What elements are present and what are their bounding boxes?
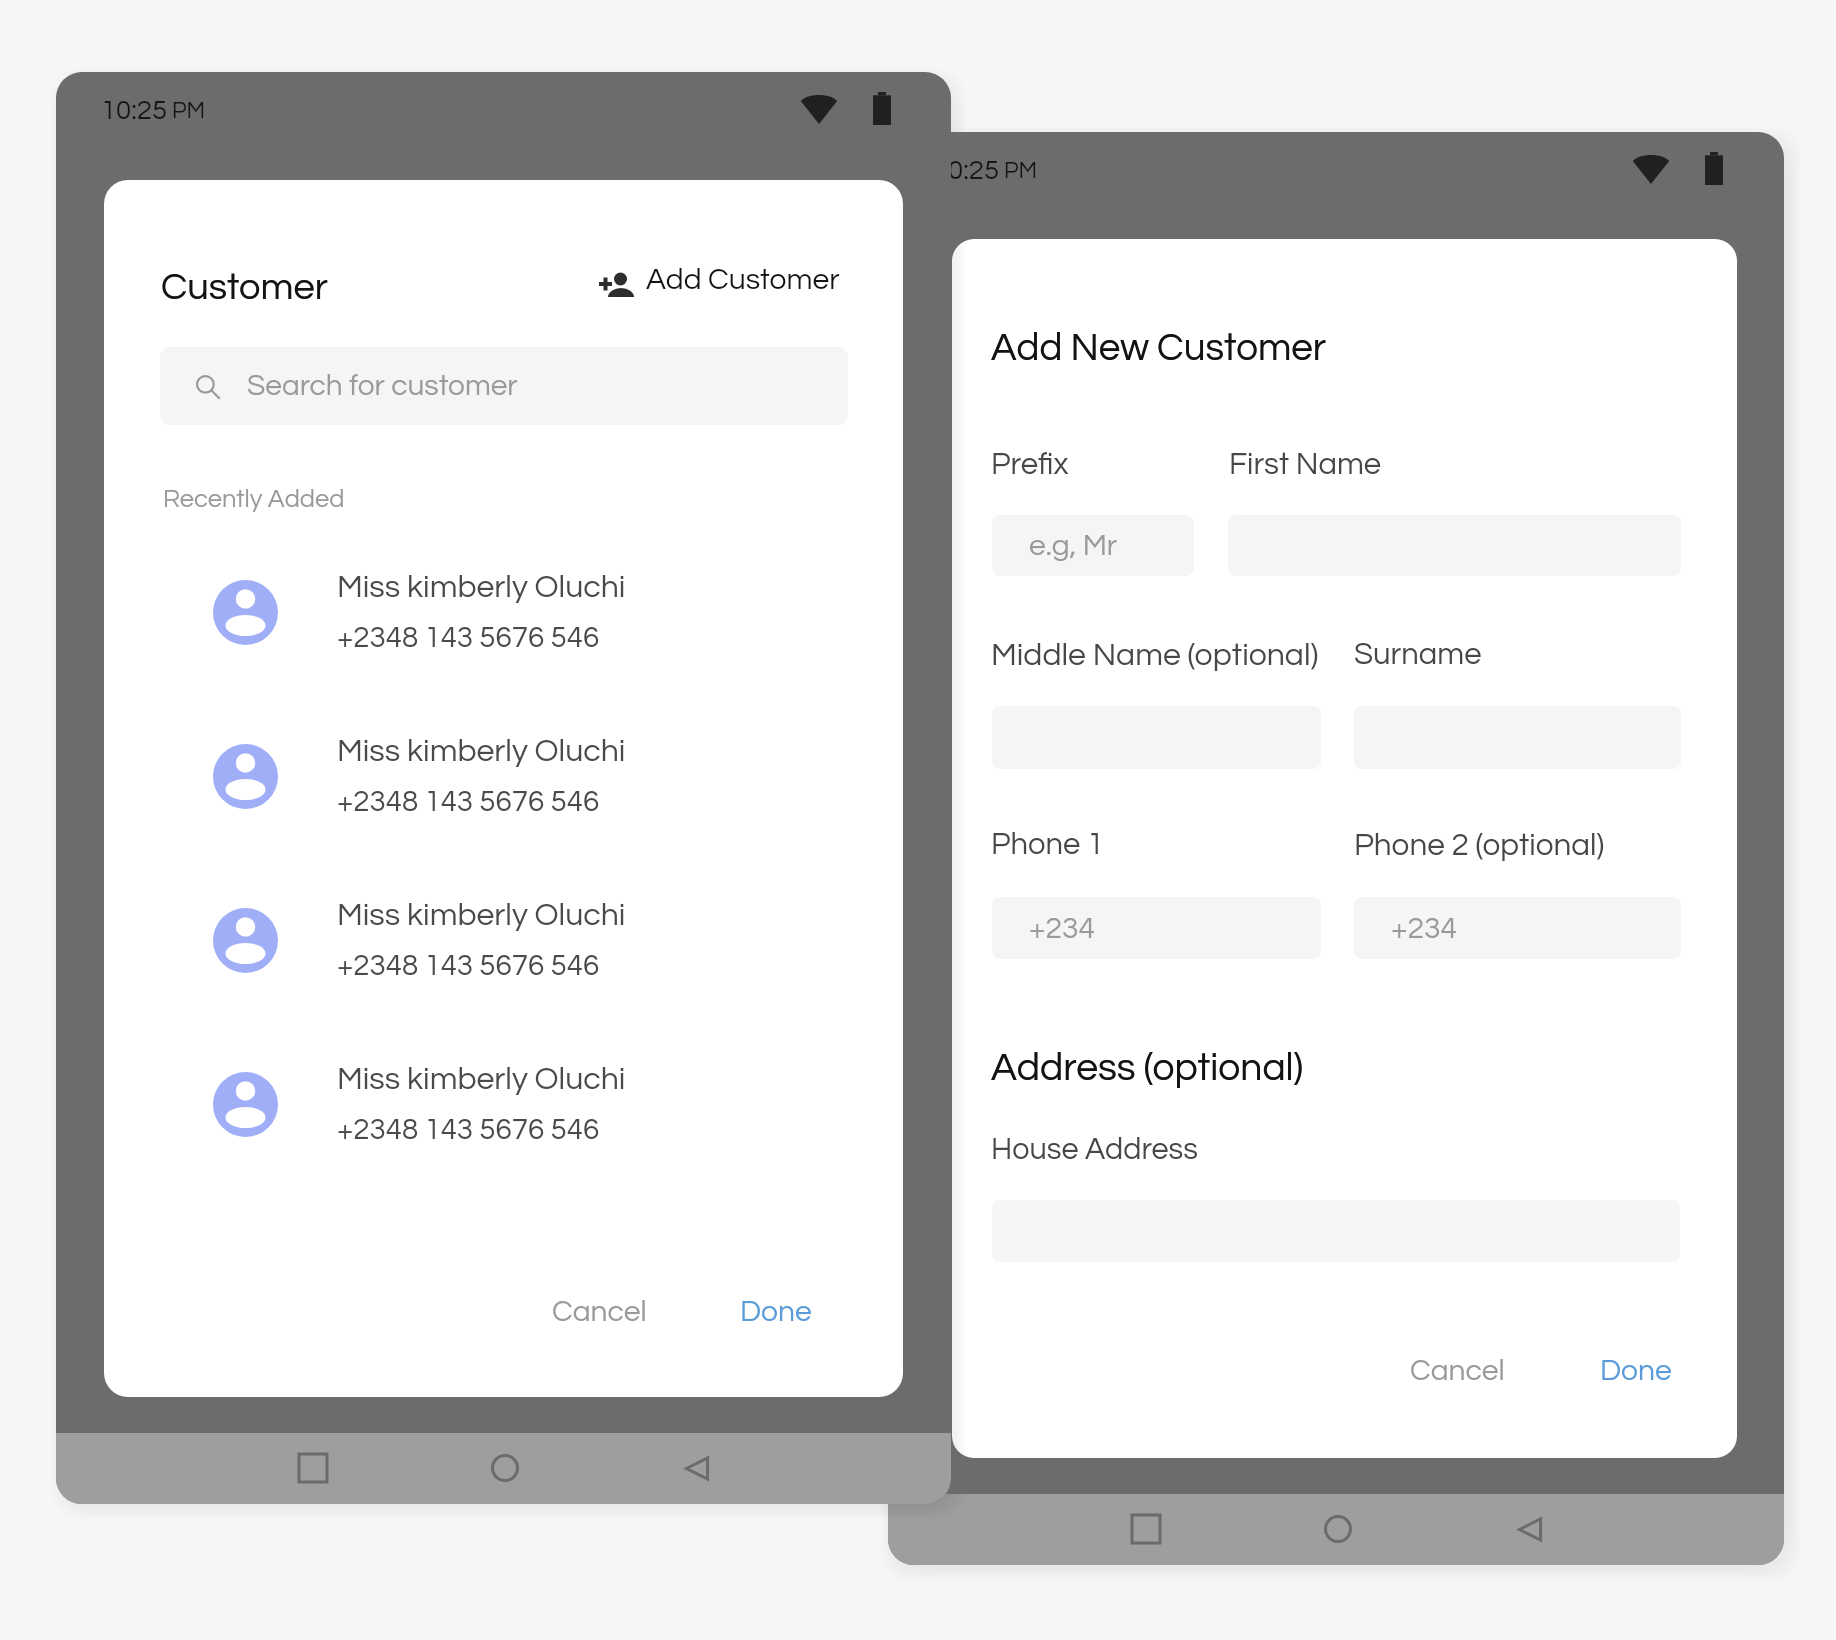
- staticText: Add New Customer: [991, 328, 1327, 368]
- staticText: Miss kimberly Oluchi: [337, 1063, 626, 1096]
- button[interactable]: Miss kimberly Oluchi: [195, 1051, 735, 1159]
- staticText: Add New Customer: [991, 328, 1327, 368]
- button[interactable]: +234: [1354, 897, 1681, 959]
- staticText: Address (optional): [991, 1048, 1304, 1088]
- staticText: Cancel: [552, 1296, 647, 1327]
- staticText: +2348 143 5676 546: [337, 1115, 600, 1145]
- staticText: PM: [1004, 159, 1037, 183]
- staticText: +234: [1029, 913, 1095, 944]
- button[interactable]: Miss kimberly Oluchi: [195, 887, 735, 995]
- button[interactable]: +234: [992, 897, 1321, 959]
- staticText: Search for customer: [247, 371, 518, 402]
- button[interactable]: Home: [479, 1442, 531, 1494]
- button[interactable]: Done: [1585, 1344, 1689, 1403]
- staticText: Surname: [1354, 639, 1482, 671]
- button[interactable]: Back: [671, 1442, 723, 1494]
- staticText: Phone 2 (optional): [1354, 829, 1605, 861]
- button[interactable]: Add Customer: [584, 258, 850, 309]
- staticText: Done: [740, 1296, 812, 1327]
- button[interactable]: Home: [1312, 1503, 1364, 1555]
- staticText: Phone 1: [991, 829, 1104, 861]
- button[interactable]: Cancel: [537, 1285, 664, 1344]
- staticText: Add Customer: [646, 264, 840, 295]
- staticText: House Address: [991, 1134, 1198, 1165]
- staticText: Cancel: [1410, 1355, 1505, 1386]
- staticText: +2348 143 5676 546: [337, 951, 600, 981]
- staticText: e.g, Mr: [1029, 530, 1118, 561]
- staticText: First Name: [1229, 449, 1382, 481]
- button[interactable]: e.g, Mr: [992, 515, 1194, 576]
- button[interactable]: Miss kimberly Oluchi: [195, 559, 735, 667]
- staticText: Customer: [161, 268, 328, 307]
- staticText: Done: [1600, 1355, 1672, 1386]
- button[interactable]: Cancel: [1395, 1344, 1522, 1403]
- button[interactable]: Back: [1504, 1503, 1556, 1555]
- staticText: PM: [172, 99, 205, 123]
- button[interactable]: Recent apps: [1120, 1503, 1172, 1555]
- button[interactable]: Miss kimberly Oluchi: [195, 723, 735, 831]
- button[interactable]: Done: [725, 1285, 829, 1344]
- button[interactable]: Search for customer: [160, 347, 848, 425]
- staticText: Miss kimberly Oluchi: [337, 571, 626, 604]
- staticText: 10:25: [101, 96, 168, 124]
- staticText: Customer: [161, 268, 328, 307]
- staticText: Recently Added: [163, 486, 345, 512]
- staticText: Address (optional): [991, 1048, 1304, 1088]
- staticText: Miss kimberly Oluchi: [337, 899, 626, 932]
- button[interactable]: Recent apps: [287, 1442, 339, 1494]
- staticText: Prefix: [991, 449, 1069, 481]
- staticText: +2348 143 5676 546: [337, 623, 600, 653]
- staticText: Miss kimberly Oluchi: [337, 735, 626, 768]
- staticText: +2348 143 5676 546: [337, 787, 600, 817]
- staticText: 10:25: [933, 156, 1000, 184]
- staticText: +234: [1391, 913, 1457, 944]
- staticText: Middle Name (optional): [991, 639, 1319, 672]
